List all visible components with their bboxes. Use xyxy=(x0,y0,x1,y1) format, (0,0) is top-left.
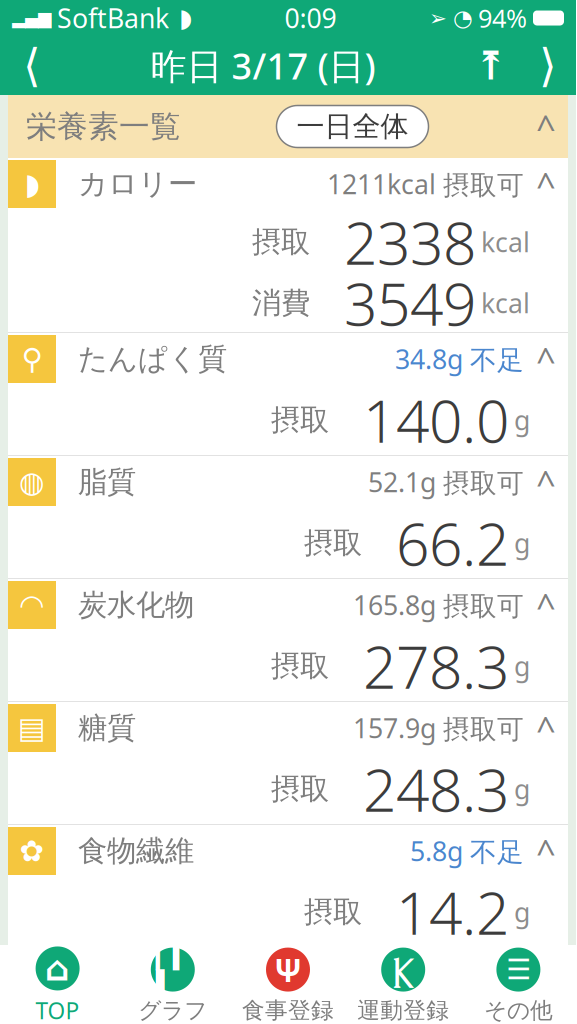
staticText: ⌂ xyxy=(45,949,70,988)
staticText: 摂取 xyxy=(271,648,329,684)
staticText: 140.0 xyxy=(363,381,509,459)
button[interactable]: 折りたたむ xyxy=(524,111,568,141)
button[interactable]: 前の日 xyxy=(0,36,64,94)
staticText: ^ xyxy=(536,103,556,149)
staticText: ^ xyxy=(536,828,556,874)
staticText: SoftBank xyxy=(57,0,169,36)
staticText: 運動登録 xyxy=(357,997,449,1024)
staticText: ◔ xyxy=(453,5,473,31)
staticText: ⤒ xyxy=(474,43,508,88)
button[interactable]: ◗ xyxy=(8,158,568,210)
staticText: 糖質 xyxy=(78,710,136,746)
button[interactable]: ▤ xyxy=(8,702,568,754)
staticText: 消費 xyxy=(252,285,310,321)
staticText: ⚲ xyxy=(21,342,42,376)
staticText: ᛕ xyxy=(393,949,414,990)
staticText: ➢ xyxy=(429,6,447,30)
staticText: 食事登録 xyxy=(242,997,334,1024)
staticText: ◗ xyxy=(24,167,39,201)
staticText: ^ xyxy=(536,582,556,628)
staticText: たんぱく質 xyxy=(78,341,227,377)
staticText: その他 xyxy=(484,997,553,1024)
staticText: 248.3 xyxy=(363,750,509,828)
staticText: g xyxy=(514,402,530,438)
button[interactable]: ◍ xyxy=(8,456,568,508)
staticText: グラフ xyxy=(138,997,207,1024)
staticText: g xyxy=(514,771,530,807)
button[interactable]: ᛕ xyxy=(346,941,461,1024)
staticText: g xyxy=(514,525,530,561)
staticText: 52.1g 摂取可 xyxy=(368,464,524,500)
staticText: 14.2 xyxy=(396,873,509,951)
button[interactable]: Ψ xyxy=(230,941,346,1024)
staticText: 66.2 xyxy=(396,504,509,582)
staticText: 165.8g 摂取可 xyxy=(353,587,524,623)
button[interactable]: 次の日 xyxy=(520,36,576,94)
staticText: 摂取 xyxy=(304,525,362,561)
staticText: 一日全体 xyxy=(296,109,408,144)
staticText: 5.8g 不足 xyxy=(410,833,524,869)
staticText: 栄養素一覧 xyxy=(26,108,181,145)
staticText: g xyxy=(514,894,530,930)
staticText: 摂取 xyxy=(252,224,310,260)
staticText: Ψ xyxy=(274,948,302,991)
button[interactable]: ⌂ xyxy=(0,939,115,1024)
staticText: ☰ xyxy=(506,954,531,985)
staticText: ^ xyxy=(536,705,556,751)
button[interactable]: ◠ xyxy=(8,579,568,631)
staticText: 0:09 xyxy=(284,0,336,36)
button[interactable]: 一日全体 xyxy=(276,105,428,147)
staticText: 摂取 xyxy=(304,894,362,930)
staticText: 摂取 xyxy=(271,771,329,807)
staticText: kcal xyxy=(481,285,530,321)
staticText: 2338 xyxy=(344,203,476,281)
staticText: ◗ xyxy=(179,4,192,32)
staticText: 157.9g 摂取可 xyxy=(353,710,524,746)
staticText: カロリー xyxy=(78,166,197,202)
staticText: TOP xyxy=(36,995,80,1024)
staticText: 昨日 3/17 (日) xyxy=(150,42,375,89)
staticText: ◠ xyxy=(20,588,43,622)
button[interactable]: ☰ xyxy=(461,941,576,1024)
staticText: ^ xyxy=(536,459,556,505)
staticText: 94% xyxy=(478,1,527,35)
staticText: 炭水化物 xyxy=(78,587,194,623)
button[interactable]: ▎▍▌ xyxy=(115,941,230,1024)
staticText: ⟨ xyxy=(23,40,41,91)
button[interactable]: 共有 xyxy=(462,36,520,94)
staticText: ✿ xyxy=(19,834,44,868)
staticText: ▂▄▆ xyxy=(12,8,51,28)
staticText: ^ xyxy=(536,161,556,207)
staticText: ▤ xyxy=(18,711,46,745)
staticText: ^ xyxy=(536,336,556,382)
staticText: ▎▍▌ xyxy=(156,944,190,995)
staticText: 摂取 xyxy=(271,402,329,438)
staticText: g xyxy=(514,648,530,684)
staticText: 278.3 xyxy=(363,627,509,705)
staticText: ◍ xyxy=(19,465,45,499)
staticText: 脂質 xyxy=(78,464,136,500)
staticText: ⟩ xyxy=(539,40,557,91)
staticText: 34.8g 不足 xyxy=(395,341,524,377)
staticText: 1211kcal 摂取可 xyxy=(327,166,524,202)
staticText: 食物繊維 xyxy=(78,833,194,869)
staticText: kcal xyxy=(481,224,530,260)
staticText: 3549 xyxy=(344,264,476,342)
button[interactable]: ✿ xyxy=(8,825,568,877)
button[interactable]: ⚲ xyxy=(8,333,568,385)
